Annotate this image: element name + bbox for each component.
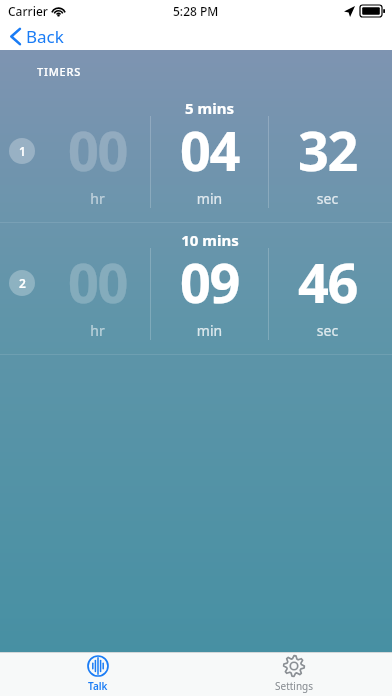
staticText: 09 bbox=[151, 245, 268, 319]
staticText: min bbox=[151, 189, 268, 208]
button[interactable]: Back bbox=[7, 23, 67, 50]
staticText: Talk bbox=[88, 679, 108, 693]
staticText: sec bbox=[269, 189, 386, 208]
staticText: sec bbox=[269, 321, 386, 340]
staticText: 00 bbox=[45, 113, 150, 187]
button[interactable]: Talk bbox=[0, 652, 196, 696]
staticText: min bbox=[151, 321, 268, 340]
staticText: 46 bbox=[269, 245, 386, 319]
staticText: 1 bbox=[19, 143, 26, 159]
staticText: Carrier bbox=[8, 3, 48, 19]
staticText: 00 bbox=[45, 245, 150, 319]
staticText: Back bbox=[26, 25, 64, 48]
staticText: 10 mins bbox=[181, 230, 239, 250]
staticText: 2 bbox=[19, 275, 26, 291]
staticText: 04 bbox=[151, 113, 268, 187]
staticText: Settings bbox=[275, 679, 314, 693]
staticText: 5:28 PM bbox=[173, 3, 219, 19]
button[interactable]: 1 bbox=[0, 91, 392, 222]
staticText: hr bbox=[45, 321, 150, 340]
staticText: hr bbox=[45, 189, 150, 208]
button[interactable]: Settings bbox=[196, 652, 392, 696]
button[interactable]: 2 bbox=[0, 223, 392, 354]
staticText: 5 mins bbox=[185, 98, 234, 118]
staticText: TIMERS bbox=[37, 64, 82, 79]
staticText: 32 bbox=[269, 113, 386, 187]
